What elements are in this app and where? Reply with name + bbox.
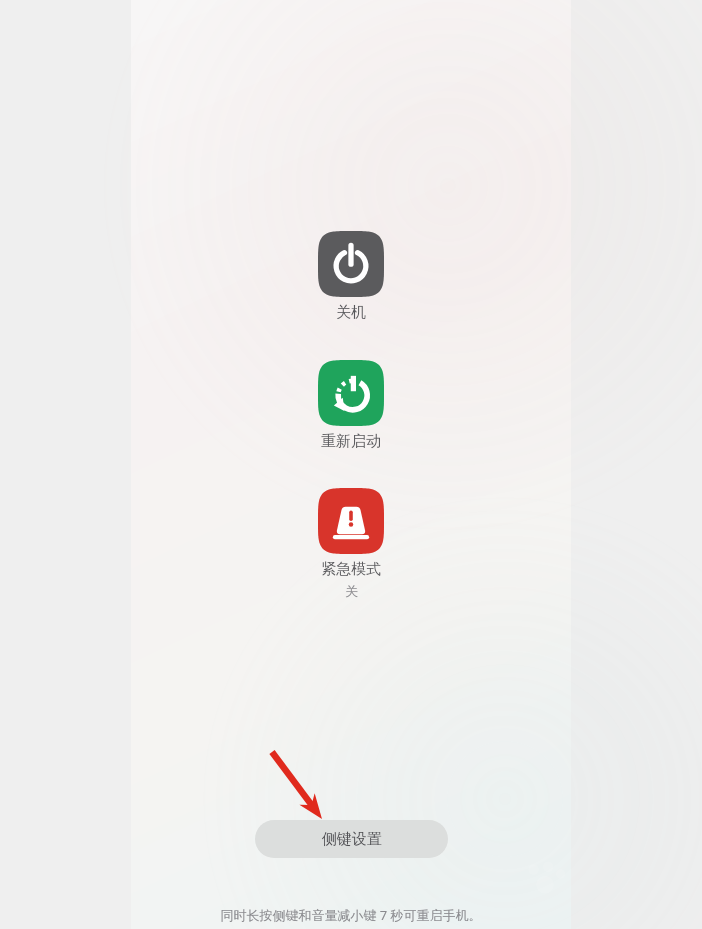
staticText: 侧键设置 [322,830,382,849]
staticText: 重新启动 [321,432,381,451]
staticText: 关机 [336,303,366,322]
staticText: 关 [345,583,358,599]
button[interactable]: 关机 [276,231,426,322]
staticText: 紧急模式 [321,560,381,579]
button[interactable]: 侧键设置 [255,820,448,858]
button[interactable]: 紧急模式 [276,488,426,599]
staticText: 同时长按侧键和音量减小键 7 秒可重启手机。 [220,906,482,924]
button[interactable]: 重新启动 [276,360,426,451]
